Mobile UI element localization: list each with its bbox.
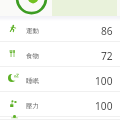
staticText: 壓力 [26, 102, 39, 110]
other: Sleep [8, 74, 19, 82]
other: Exercise [10, 25, 16, 32]
other: Weight [11, 116, 18, 118]
other: Food [10, 50, 15, 57]
staticText: 72 [101, 49, 113, 63]
staticText: 睡眠 [26, 77, 39, 85]
button[interactable]: Weight [0, 117, 120, 120]
staticText: 100 [95, 99, 113, 113]
button[interactable]: Stress [0, 92, 120, 117]
button[interactable]: Exercise [0, 17, 120, 42]
button[interactable]: Sleep [0, 67, 120, 92]
button[interactable]: Food [0, 42, 120, 67]
staticText: 食物 [26, 52, 39, 60]
staticText: 運動 [26, 27, 39, 35]
staticText: 86 [101, 24, 113, 38]
other: Stress [10, 99, 17, 107]
staticText: 100 [95, 74, 113, 88]
